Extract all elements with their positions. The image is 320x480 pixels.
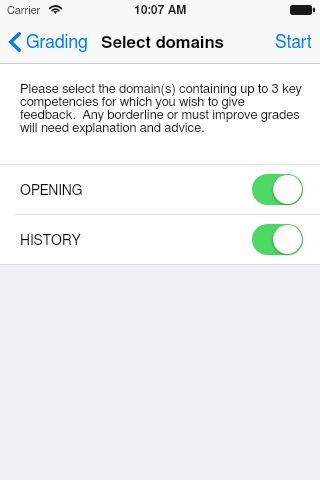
staticText: Grading: [26, 34, 88, 52]
staticText: Please select the domain(s) containing u…: [20, 83, 302, 96]
staticText: competencies for which you wish to give: [20, 96, 245, 109]
button[interactable]: HISTORY: [0, 215, 320, 264]
staticText: 10:07 AM: [134, 4, 187, 16]
button[interactable]: Grading: [0, 26, 94, 58]
button[interactable]: Toggle domain: [252, 224, 303, 255]
staticText: OPENING: [20, 184, 83, 198]
button[interactable]: Start: [275, 34, 320, 52]
button[interactable]: OPENING: [0, 165, 320, 214]
staticText: feedback. Any borderline or must improve…: [20, 109, 300, 122]
staticText: Select domains: [101, 35, 224, 52]
staticText: will need explanation and advice.: [20, 122, 205, 135]
staticText: Carrier: [7, 5, 41, 16]
staticText: HISTORY: [20, 234, 81, 248]
button[interactable]: Toggle domain: [252, 174, 303, 205]
